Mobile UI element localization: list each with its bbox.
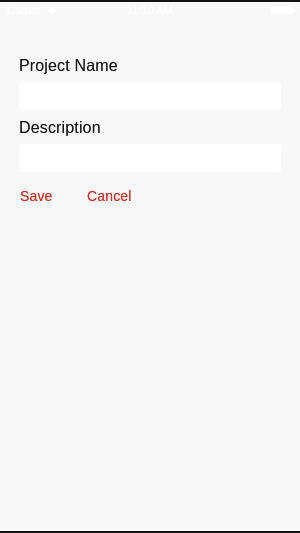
staticText: Project Name [19, 57, 118, 75]
button[interactable]: Save [10, 181, 63, 211]
staticText: Cancel [87, 188, 132, 204]
staticText: Save [20, 188, 53, 204]
other: Wi-Fi signal [47, 5, 57, 14]
staticText: Project Name [19, 57, 118, 75]
staticText: Description [19, 119, 101, 137]
staticText: Save [20, 188, 53, 204]
staticText: Description [19, 119, 101, 137]
staticText: Cancel [87, 188, 132, 204]
button[interactable]: Cancel [77, 181, 142, 211]
